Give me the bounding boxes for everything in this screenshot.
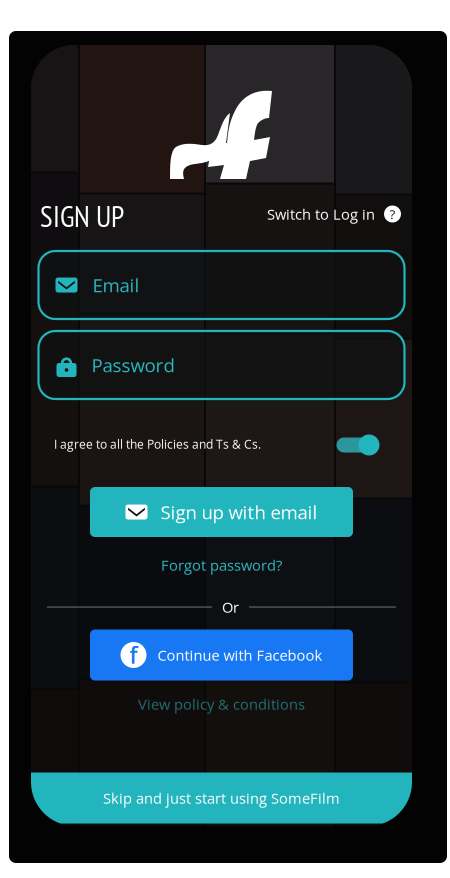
button[interactable]: Sign up with email (90, 487, 353, 537)
staticText: I agree to all the Policies and Ts & Cs. (54, 436, 261, 452)
button[interactable]: Forgot password? (141, 551, 301, 579)
staticText: Continue with Facebook (157, 645, 322, 665)
staticText: ? (389, 205, 395, 223)
staticText: Sign up with email (160, 499, 317, 525)
staticText: Or (222, 597, 239, 617)
staticText: Switch to Log in (267, 204, 375, 224)
button[interactable]: View policy & conditions (126, 690, 316, 718)
button[interactable]: Agree to policies and terms (336, 432, 379, 458)
staticText: View policy & conditions (138, 694, 305, 714)
button[interactable]: f (90, 629, 353, 680)
button[interactable]: Password (38, 331, 404, 399)
staticText: f (129, 640, 137, 670)
staticText: Forgot password? (161, 555, 282, 575)
button[interactable]: Skip and just start using SomeFilm (31, 772, 412, 823)
staticText: Skip and just start using SomeFilm (103, 788, 340, 808)
staticText: Email (92, 272, 139, 298)
button[interactable]: Email (38, 251, 404, 319)
button[interactable]: Switch to Log in (267, 200, 400, 228)
staticText: Password (91, 352, 174, 378)
staticText: SIGN UP (40, 197, 124, 235)
